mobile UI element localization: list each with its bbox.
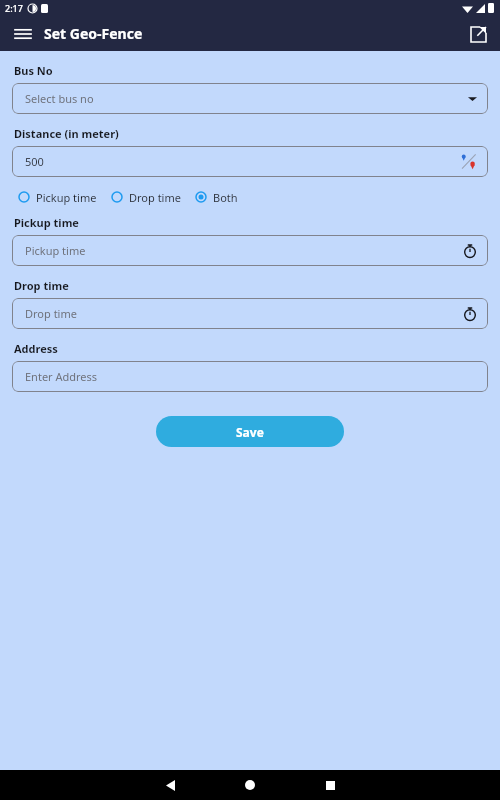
staticText: Drop time <box>25 306 463 321</box>
button[interactable]: Drop time <box>111 186 181 208</box>
staticText: 2:17 <box>5 2 23 14</box>
button[interactable]: Enter Address <box>12 361 488 392</box>
button[interactable]: Open in new window <box>462 18 494 50</box>
button[interactable]: Both <box>195 186 238 208</box>
button[interactable]: Pickup time <box>18 186 97 208</box>
staticText: Set Geo-Fence <box>44 24 143 43</box>
button[interactable]: Drop time <box>12 298 488 329</box>
staticText: Drop time <box>129 190 181 205</box>
staticText: Address <box>14 341 58 356</box>
button[interactable]: 500 <box>12 146 488 177</box>
staticText: Pickup time <box>14 215 79 230</box>
staticText: Save <box>236 424 264 440</box>
button[interactable]: Recent apps <box>312 770 348 800</box>
button[interactable]: Save <box>156 416 344 447</box>
button[interactable]: Select bus no <box>12 83 488 114</box>
button[interactable]: Pickup time <box>12 235 488 266</box>
staticText: Bus No <box>14 63 53 78</box>
staticText: Distance (in meter) <box>14 126 119 141</box>
staticText: Drop time <box>14 278 69 293</box>
staticText: Both <box>213 190 238 205</box>
button[interactable]: Open navigation menu <box>6 17 40 51</box>
staticText: Pickup time <box>25 243 463 258</box>
button[interactable]: Back <box>152 770 188 800</box>
staticText: Pickup time <box>36 190 97 205</box>
button[interactable]: Home <box>232 770 268 800</box>
staticText: 500 <box>25 154 460 169</box>
staticText: Enter Address <box>25 369 477 384</box>
staticText: Select bus no <box>25 91 468 106</box>
